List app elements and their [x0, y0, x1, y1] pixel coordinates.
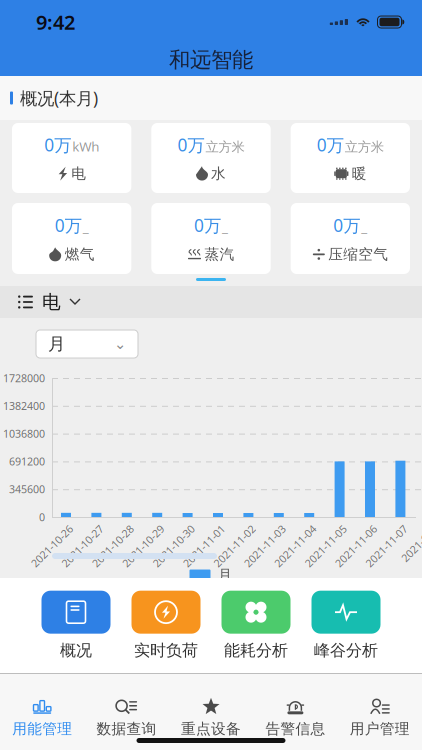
- staticText: 2021-11-04: [268, 539, 322, 553]
- staticText: 691200: [9, 454, 45, 468]
- button[interactable]: 用户管理: [338, 700, 422, 738]
- staticText: 月: [217, 566, 232, 584]
- button[interactable]: 月: [36, 330, 138, 358]
- staticText: 0万: [333, 214, 360, 237]
- staticText: 1382400: [3, 399, 45, 413]
- button[interactable]: 峰谷分析: [301, 591, 391, 660]
- staticText: 2021-10-28: [86, 539, 140, 553]
- staticText: 概况: [60, 641, 92, 660]
- staticText: 2021-10-26: [25, 539, 79, 553]
- button[interactable]: 0万: [291, 203, 410, 274]
- button[interactable]: 实时负荷: [121, 591, 211, 660]
- staticText: kWh: [72, 137, 99, 155]
- staticText: 2021-10-27: [55, 539, 109, 553]
- button[interactable]: 用能管理: [0, 700, 84, 738]
- button[interactable]: 概况: [31, 591, 121, 660]
- staticText: 2021-11-06: [329, 539, 383, 553]
- staticText: 燃气: [65, 245, 95, 263]
- staticText: 告警信息: [265, 720, 325, 738]
- staticText: 2021-10-29: [116, 539, 170, 553]
- staticText: 2021-10-30: [147, 539, 201, 553]
- staticText: 立方米: [345, 139, 384, 155]
- staticText: _: [222, 218, 228, 236]
- staticText: 月: [48, 333, 65, 355]
- staticText: ⌄: [114, 336, 126, 352]
- staticText: 345600: [9, 482, 45, 496]
- button[interactable]: 0万: [12, 123, 131, 193]
- staticText: 0万: [194, 214, 221, 237]
- staticText: 2021-11-01: [177, 539, 231, 553]
- staticText: 2021-11-05: [299, 539, 353, 553]
- button[interactable]: 0万: [151, 123, 271, 193]
- staticText: 0万: [317, 133, 344, 156]
- staticText: 暖: [352, 165, 367, 183]
- staticText: 和远智能: [169, 47, 253, 73]
- staticText: 数据查询: [97, 720, 157, 738]
- staticText: 2021-11-03: [238, 539, 292, 553]
- staticText: 实时负荷: [134, 641, 198, 660]
- staticText: 水: [211, 165, 226, 183]
- staticText: 0万: [44, 133, 71, 156]
- staticText: 用户管理: [350, 720, 410, 738]
- button[interactable]: 重点设备: [169, 700, 253, 738]
- staticText: 重点设备: [181, 720, 241, 738]
- staticText: 0万: [177, 133, 204, 156]
- staticText: 立方米: [205, 139, 244, 155]
- staticText: 2021-11-02: [207, 539, 261, 553]
- button[interactable]: 0万: [12, 203, 131, 274]
- staticText: 2021-11: [397, 539, 422, 553]
- button[interactable]: 电: [0, 286, 422, 318]
- staticText: 1036800: [3, 426, 45, 441]
- staticText: 2021-11-07: [359, 539, 413, 553]
- staticText: 峰谷分析: [314, 641, 378, 660]
- staticText: _: [83, 218, 89, 236]
- staticText: 电: [42, 290, 61, 313]
- staticText: 概况(本月): [20, 86, 98, 109]
- button[interactable]: 0万: [151, 203, 271, 274]
- staticText: 压缩空气: [328, 245, 388, 263]
- staticText: 1728000: [3, 371, 45, 385]
- staticText: 用能管理: [12, 720, 72, 738]
- button[interactable]: 0万: [291, 123, 410, 193]
- button[interactable]: 告警信息: [253, 700, 338, 738]
- staticText: 能耗分析: [224, 641, 288, 660]
- button[interactable]: 能耗分析: [211, 591, 301, 660]
- staticText: 0万: [55, 214, 82, 237]
- button[interactable]: 数据查询: [84, 700, 169, 738]
- staticText: 9:42: [36, 9, 75, 35]
- staticText: 电: [71, 165, 86, 183]
- staticText: 0: [39, 510, 45, 524]
- staticText: _: [361, 218, 367, 236]
- staticText: 蒸汽: [204, 245, 234, 263]
